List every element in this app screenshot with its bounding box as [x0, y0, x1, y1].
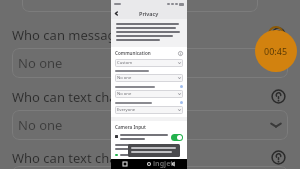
button[interactable]: No one — [12, 110, 288, 140]
staticText: 00:45 — [264, 45, 288, 57]
other: Camera toggle, on — [171, 134, 183, 141]
staticText: ingjet — [153, 159, 174, 169]
staticText: Who can text chat with me? — [12, 88, 180, 106]
button[interactable]: Back — [114, 11, 119, 16]
button[interactable]: Camera toggle, on — [115, 134, 183, 141]
button[interactable]: Everyone — [115, 106, 183, 114]
button[interactable]: Home — [147, 162, 151, 166]
staticText: No one — [117, 91, 132, 97]
staticText: Who can message me? — [12, 26, 152, 44]
button[interactable]: Recents — [123, 162, 127, 166]
button[interactable]: No one — [115, 90, 183, 98]
staticText: Communication — [115, 50, 151, 56]
button[interactable]: Custom — [115, 59, 183, 67]
button[interactable]: Help — [271, 150, 286, 165]
staticText: No one — [18, 54, 63, 72]
staticText: No one — [18, 116, 63, 134]
staticText: Who can text chat with me? — [12, 149, 180, 167]
staticText: Camera Input — [115, 124, 146, 130]
button[interactable]: No one — [115, 74, 183, 82]
button[interactable]: Help — [271, 89, 286, 104]
staticText: Everyone — [117, 107, 136, 113]
button[interactable]: Help — [271, 27, 286, 42]
staticText: Custom — [117, 60, 133, 66]
button[interactable]: Back — [171, 162, 175, 166]
staticText: Privacy — [139, 10, 159, 17]
staticText: No one — [117, 75, 132, 81]
button[interactable]: Recording timer 00:45 — [255, 30, 297, 72]
button[interactable]: No one — [12, 48, 288, 78]
button[interactable]: Information — [178, 51, 183, 56]
